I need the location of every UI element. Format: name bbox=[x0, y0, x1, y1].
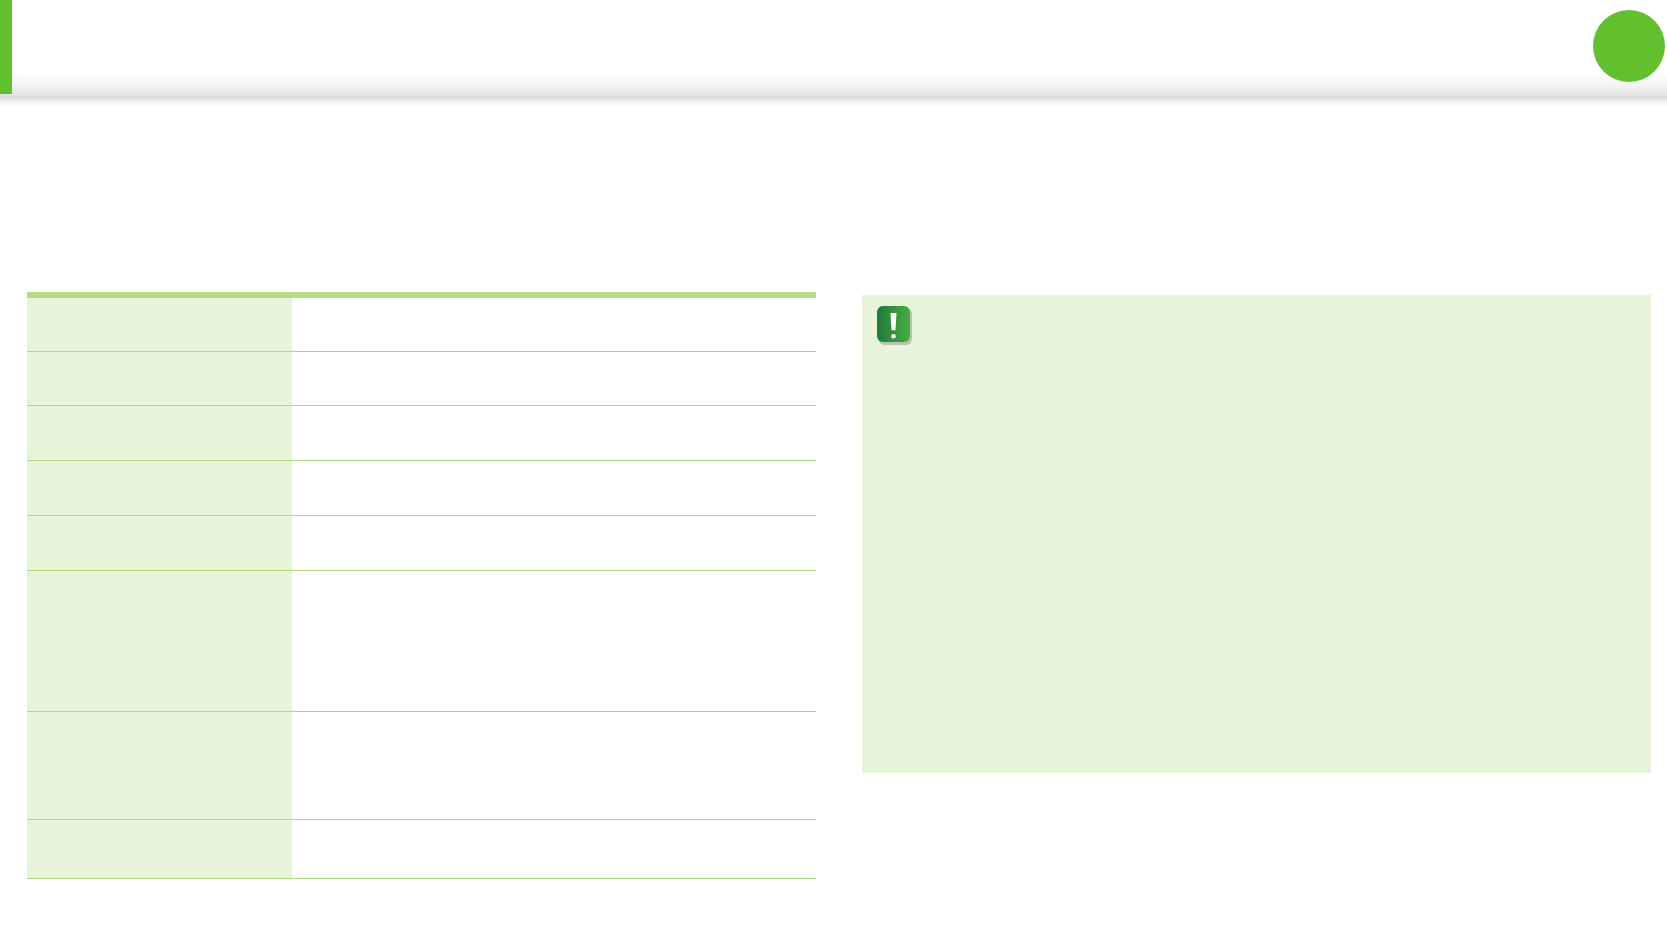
button[interactable] bbox=[27, 820, 816, 878]
button[interactable] bbox=[27, 712, 816, 819]
button[interactable] bbox=[27, 352, 816, 405]
other: Caution bbox=[877, 306, 912, 345]
button[interactable]: Section badge bbox=[1593, 10, 1665, 82]
button[interactable] bbox=[27, 298, 816, 351]
button[interactable] bbox=[27, 516, 816, 570]
button[interactable] bbox=[27, 406, 816, 460]
button[interactable] bbox=[27, 461, 816, 515]
button[interactable]: Caution bbox=[862, 295, 1651, 773]
button[interactable] bbox=[27, 571, 816, 711]
